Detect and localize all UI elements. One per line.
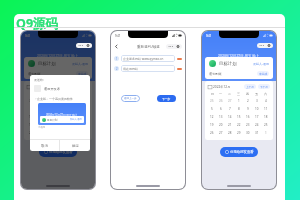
staticText: 取消 [41,144,48,148]
staticText: 13 [219,115,223,119]
staticText: 12 [210,115,214,119]
staticText: 小程序 [38,126,46,129]
staticText: 2 [66,99,68,103]
staticText: 7 [229,107,231,111]
staticText: 14 [228,115,232,119]
staticText: 8 [238,107,240,111]
staticText: 16 [65,115,69,119]
staticText: 发起人-通用 [72,62,88,66]
staticText: 2022年12月 [32,85,50,89]
staticText: 通用开发者 [44,87,60,91]
staticText: 26 [29,131,33,135]
button[interactable]: 分享给好友查看 [220,147,258,157]
staticText: 目标计划 [47,118,58,121]
staticText: 28 [228,131,232,135]
staticText: Q9源码 [16,15,59,32]
staticText: 三 [237,92,240,96]
staticText: 15 [56,115,60,119]
staticText: 27 [228,99,232,103]
button[interactable]: 下一步 [157,95,176,102]
staticText: 返回上一步 [124,97,137,100]
staticText: 10 [255,107,259,111]
button[interactable]: 下个月 [260,84,268,89]
staticText: 下个月 [260,85,268,88]
staticText: 9 [247,107,249,111]
staticText: 19 [29,123,33,127]
staticText: 21 [228,123,232,127]
staticText: 发起人-通用 [253,62,269,66]
staticText: 3 [256,99,258,103]
button[interactable]: More [166,44,182,49]
button[interactable]: More [76,43,92,48]
staticText: 日 [211,92,214,96]
button[interactable]: 上个月 [246,84,254,89]
staticText: 分享给好友查看 [49,150,73,154]
button[interactable]: 确定 [60,140,90,151]
staticText: 2022年12月 [213,85,231,89]
staticText: 11 [264,107,268,111]
staticText: 分享给好友查看 [230,150,254,154]
staticText: 1 [116,57,118,61]
staticText: 「企业版」一个高品质的软件 [34,97,73,101]
button[interactable]: 未完成 [76,71,88,76]
button[interactable]: 返回上一步 [121,95,140,102]
staticText: 9:41 [206,34,212,38]
staticText: 22 [237,123,241,127]
staticText: 9:41 [25,34,31,38]
staticText: 目标计划 [38,61,56,67]
staticText: 24 [255,123,259,127]
staticText: 重新签约/续签 [137,44,160,49]
staticText: 发送给: [34,78,44,82]
staticText: 20 [219,123,223,127]
staticText: 未完成 [259,72,268,76]
staticText: 17 [74,115,78,119]
staticText: 25 [29,99,33,103]
staticText: 1 [57,99,59,103]
staticText: 五 [255,92,258,96]
staticText: 12 [29,115,33,119]
staticText: 27 [47,99,51,103]
staticText: 9:41 [115,34,121,38]
button[interactable]: 填在用网站 [123,65,173,72]
staticText: 17 [255,115,259,119]
staticText: 26 [219,99,223,103]
button[interactable]: More [257,43,273,48]
button[interactable]: 取消 [30,140,59,151]
staticText: 14 [47,115,51,119]
staticText: 25 [83,123,87,127]
staticText: 18 [264,115,268,119]
staticText: 2024年12月27日 周五 晚上 [37,53,79,58]
staticText: 18 [83,115,87,119]
staticText: 30 [246,131,250,135]
staticText: 4 [265,99,267,103]
button[interactable]: 分享给好友查看 [39,147,77,157]
button[interactable]: More [76,43,92,48]
staticText: 通知到账 [209,72,222,76]
staticText: 25 [264,123,268,127]
button[interactable]: 未完成 [257,71,269,76]
staticText: 通知到账 [28,72,41,76]
button[interactable]: Back [113,43,120,50]
staticText: 填在用网站 [123,67,138,71]
staticText: 下一步 [162,97,171,100]
staticText: 企业服务网站 www.qymao.cn [123,57,164,61]
staticText: 19 [210,123,214,127]
staticText: 11 [83,107,87,111]
staticText: 23 [65,123,69,127]
staticText: 16 [246,115,250,119]
button[interactable]: 企业服务网站 www.qymao.cn [123,55,173,62]
